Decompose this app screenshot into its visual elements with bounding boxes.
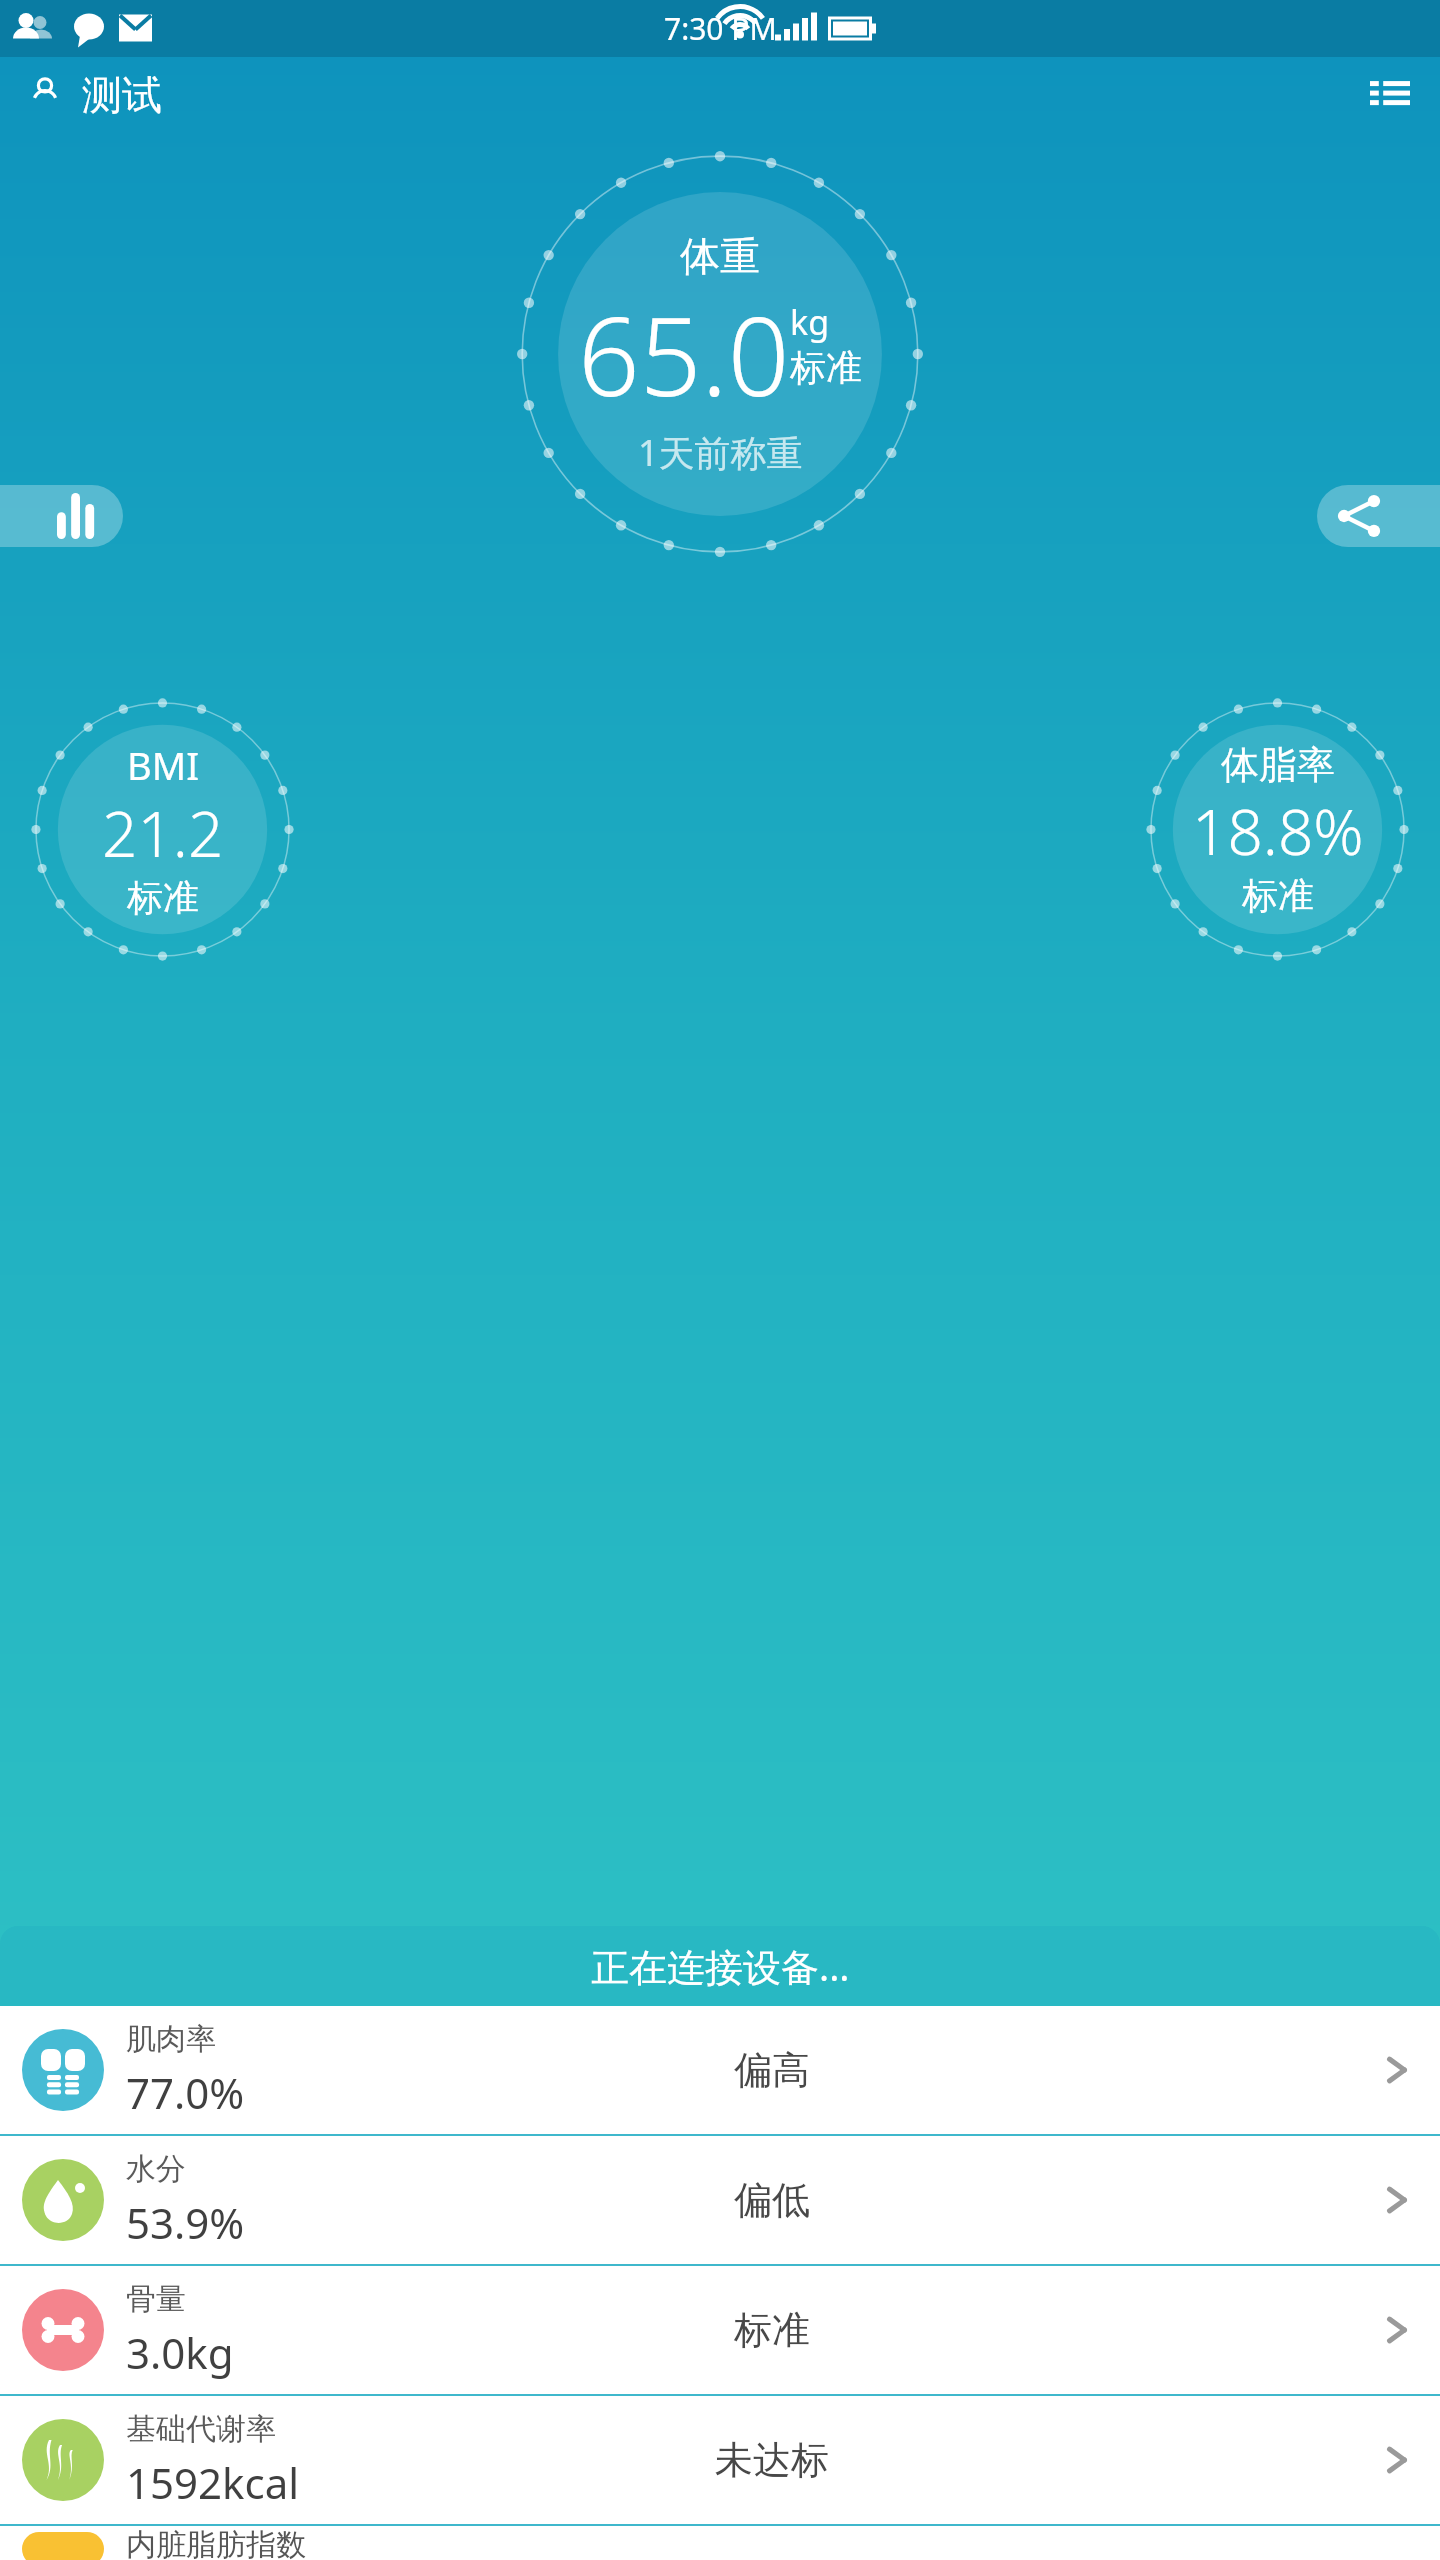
staticText: 7:30 PM [664,8,777,49]
button[interactable]: Menu [1362,67,1418,123]
staticText: 体脂率 [1221,741,1335,789]
staticText: 1天前称重 [638,428,803,477]
staticText: 53.9% [126,2194,245,2251]
staticText: BMI [127,739,200,791]
button[interactable]: 水分 [0,2136,1440,2264]
staticText: 偏高 [734,2046,810,2094]
button[interactable]: Share [1317,485,1440,547]
staticText: 骨量 [126,2280,186,2318]
staticText: 内脏脂肪指数 [126,2526,306,2560]
button[interactable]: Chart [0,485,123,547]
staticText: 水分 [126,2150,186,2188]
button[interactable]: 肌肉率 [0,2006,1440,2134]
staticText: 标准 [127,875,199,920]
button[interactable]: 体脂率 [1145,697,1410,962]
staticText: 65.0 [578,281,790,428]
button[interactable]: 正在连接设备... [0,1926,1440,2006]
staticText: 77.0% [126,2064,245,2121]
staticText: 21.2 [102,791,224,875]
button[interactable]: 基础代谢率 [0,2396,1440,2524]
button[interactable]: 骨量 [0,2266,1440,2394]
staticText: 标准 [734,2306,810,2354]
staticText: 标准 [790,345,862,390]
button[interactable]: Profile [22,72,68,118]
staticText: 体重 [680,231,760,281]
staticText: 未达标 [715,2436,829,2484]
staticText: 正在连接设备... [591,1940,850,1992]
staticText: kg [790,299,830,345]
staticText: 标准 [1242,873,1314,918]
button[interactable]: BMI [30,697,295,962]
staticText: 基础代谢率 [126,2410,276,2448]
staticText: 18.8% [1192,789,1364,873]
staticText: 肌肉率 [126,2020,216,2058]
staticText: 1592kcal [126,2454,300,2511]
staticText: 3.0kg [126,2324,234,2381]
staticText: 测试 [82,70,162,120]
staticText: 偏低 [734,2176,810,2224]
